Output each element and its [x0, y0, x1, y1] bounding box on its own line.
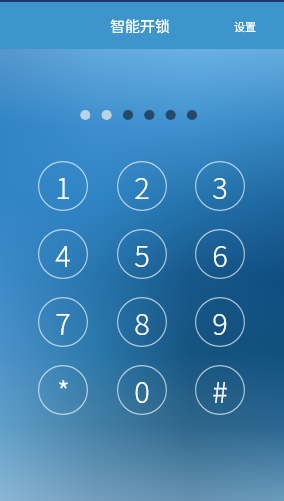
button[interactable]: 设置: [223, 6, 267, 46]
staticText: 智能开锁: [110, 15, 171, 37]
staticText: 2: [134, 165, 150, 207]
other: PIN progress: [70, 104, 208, 126]
button[interactable]: 8: [117, 297, 167, 347]
button[interactable]: *: [38, 365, 88, 415]
button[interactable]: 4: [38, 229, 88, 279]
staticText: 6: [212, 233, 228, 275]
staticText: 0: [134, 369, 150, 411]
button[interactable]: 5: [117, 229, 167, 279]
staticText: #: [212, 369, 228, 411]
staticText: 4: [55, 233, 71, 275]
staticText: 设置: [234, 18, 256, 34]
button[interactable]: 2: [117, 161, 167, 211]
staticText: 3: [212, 165, 228, 207]
button[interactable]: 3: [195, 161, 245, 211]
staticText: 1: [55, 165, 71, 207]
button[interactable]: 0: [117, 365, 167, 415]
staticText: 9: [212, 301, 228, 343]
button[interactable]: #: [195, 365, 245, 415]
button[interactable]: 6: [195, 229, 245, 279]
button[interactable]: 1: [38, 161, 88, 211]
button[interactable]: 9: [195, 297, 245, 347]
staticText: 7: [55, 301, 71, 343]
staticText: *: [57, 369, 70, 411]
button[interactable]: 7: [38, 297, 88, 347]
staticText: 8: [134, 301, 150, 343]
staticText: 5: [134, 233, 150, 275]
